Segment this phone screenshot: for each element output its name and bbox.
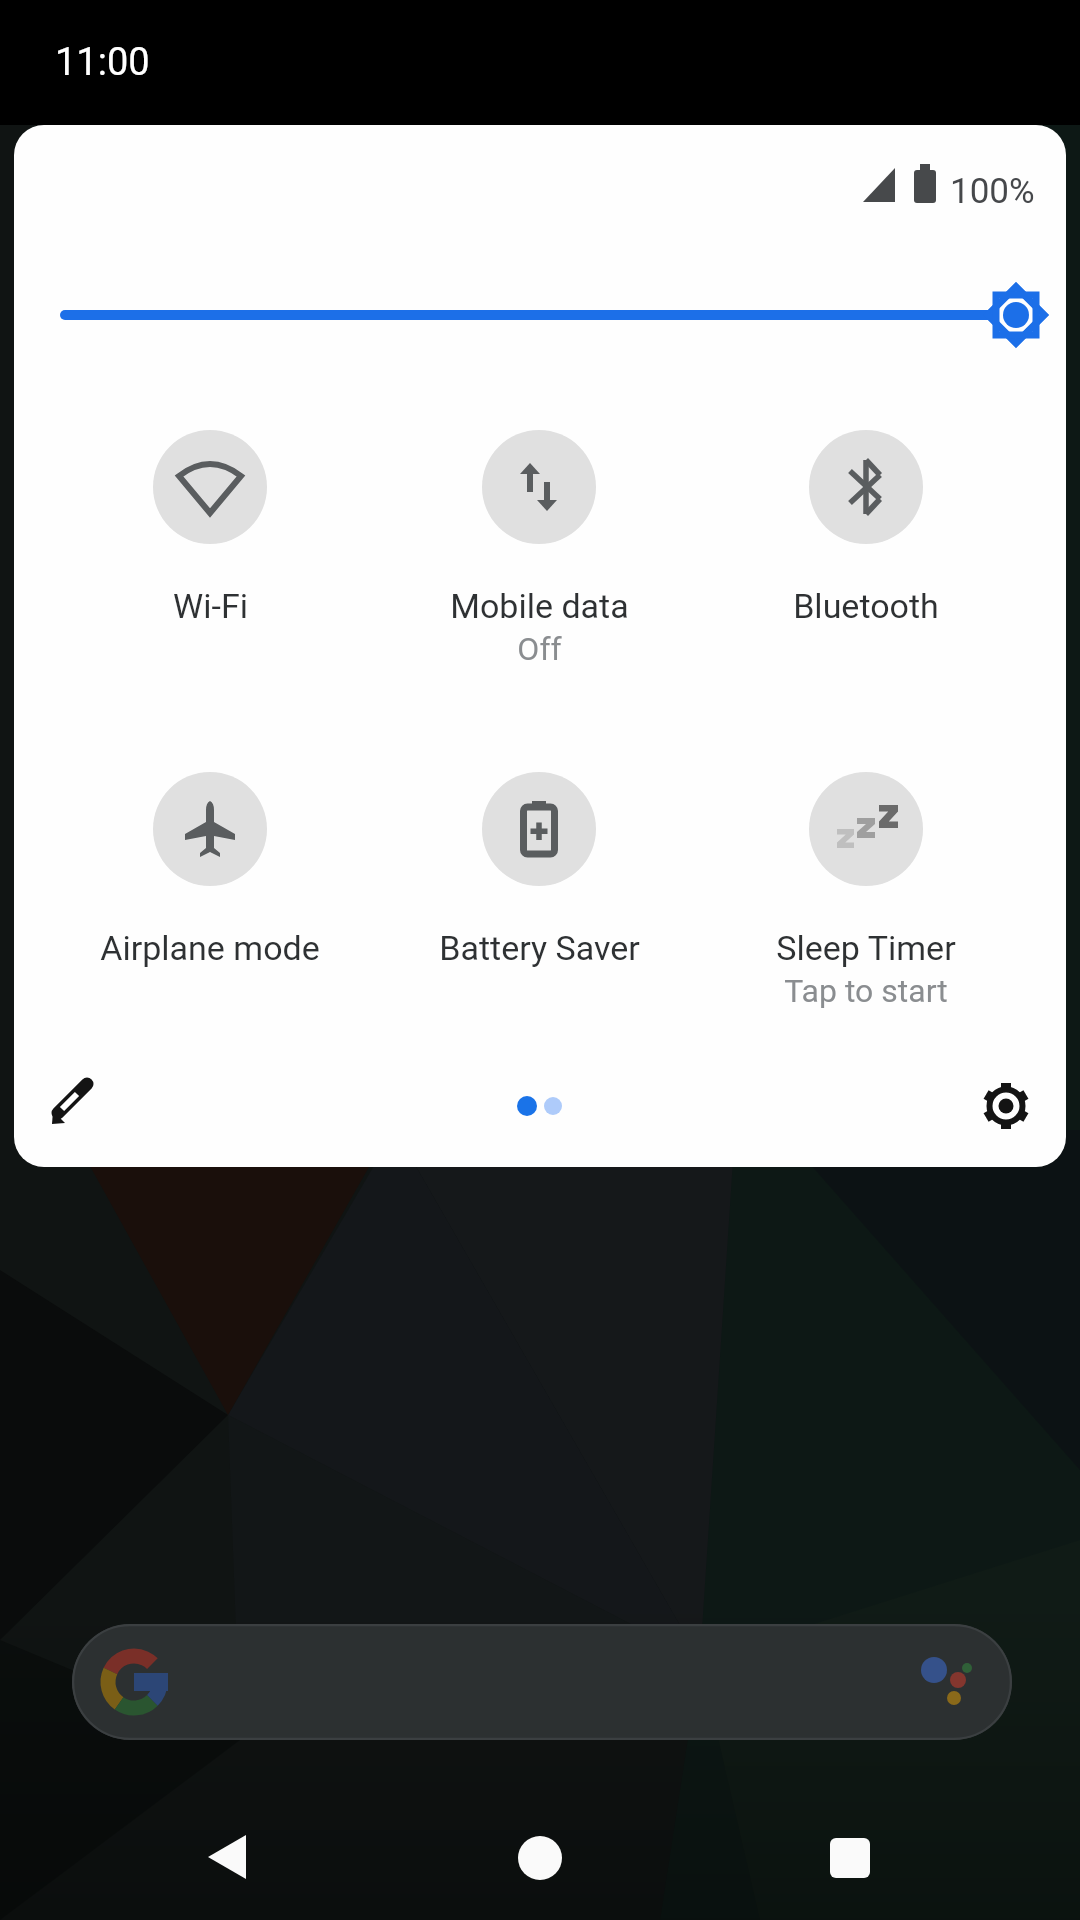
staticText: Airplane mode [100,928,320,968]
button[interactable] [187,1817,267,1897]
button[interactable] [72,1624,1012,1740]
button[interactable] [809,772,923,886]
button[interactable] [976,1076,1036,1136]
button[interactable] [482,430,596,544]
staticText: 11:00 [55,40,150,85]
button[interactable] [42,1079,102,1139]
staticText: Wi-Fi [173,586,248,626]
staticText: Tap to start [784,972,948,1010]
staticText: Battery Saver [439,928,640,968]
staticText: Sleep Timer [776,928,956,968]
button[interactable] [153,772,267,886]
staticText: Mobile data [450,586,629,626]
staticText: 100% [950,171,1035,212]
staticText: Off [517,630,562,668]
button[interactable] [500,1818,580,1898]
button[interactable] [482,772,596,886]
button[interactable] [153,430,267,544]
button[interactable] [810,1818,890,1898]
staticText: Bluetooth [793,586,939,626]
button[interactable] [809,430,923,544]
